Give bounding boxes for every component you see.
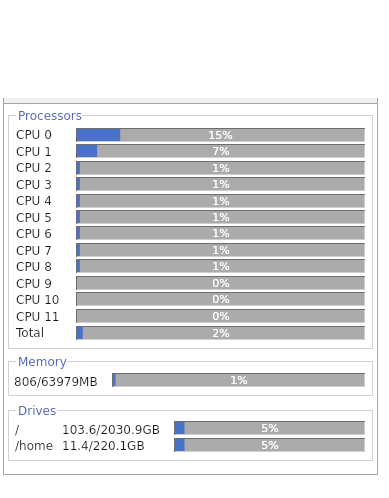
staticText: CPU 11 [16, 310, 60, 324]
staticText: CPU 3 [16, 178, 52, 192]
staticText: 5% [261, 439, 279, 452]
button[interactable]: CPU 10 usage [76, 292, 365, 306]
staticText: CPU 2 [16, 161, 52, 175]
button[interactable]: CPU 0 usage [76, 128, 365, 142]
staticText: Drives [18, 404, 57, 418]
staticText: 0% [212, 293, 230, 306]
staticText: 806/63979MB [14, 375, 98, 389]
staticText: Memory [18, 355, 67, 369]
button[interactable]: CPU 2 usage [76, 161, 365, 175]
staticText: CPU 7 [16, 244, 52, 258]
button[interactable]: CPU 11 usage [76, 309, 365, 323]
staticText: 5% [261, 422, 279, 435]
staticText: 1% [212, 162, 230, 175]
staticText: / [15, 423, 20, 437]
staticText: 1% [212, 195, 230, 208]
staticText: CPU 0 [16, 128, 52, 142]
staticText: 2% [212, 327, 230, 340]
button[interactable]: CPU 7 usage [76, 243, 365, 257]
button[interactable]: CPU 5 usage [76, 210, 365, 224]
staticText: 103.6/2030.9GB [62, 423, 160, 437]
staticText: 1% [212, 211, 230, 224]
staticText: CPU 6 [16, 227, 52, 241]
button[interactable]: Total CPU usage [76, 326, 365, 340]
staticText: 1% [212, 244, 230, 257]
staticText: Processors [18, 109, 83, 123]
staticText: 11.4/220.1GB [62, 439, 145, 453]
staticText: CPU 8 [16, 260, 52, 274]
button[interactable]: CPU 6 usage [76, 226, 365, 240]
staticText: 1% [212, 260, 230, 273]
staticText: CPU 10 [16, 293, 60, 307]
staticText: 1% [230, 374, 248, 387]
staticText: CPU 1 [16, 145, 52, 159]
staticText: 1% [212, 178, 230, 191]
button[interactable]: Memory usage [112, 373, 365, 387]
button[interactable]: Home drive usage [174, 438, 365, 452]
button[interactable]: CPU 9 usage [76, 276, 365, 290]
staticText: 15% [208, 129, 233, 142]
button[interactable]: CPU 3 usage [76, 177, 365, 191]
staticText: 7% [212, 145, 230, 158]
staticText: /home [15, 439, 54, 453]
staticText: 0% [212, 310, 230, 323]
button[interactable]: Root drive usage [174, 421, 365, 435]
staticText: CPU 9 [16, 277, 52, 291]
staticText: CPU 4 [16, 194, 52, 208]
staticText: CPU 5 [16, 211, 52, 225]
button[interactable]: CPU 1 usage [76, 144, 365, 158]
button[interactable]: CPU 4 usage [76, 194, 365, 208]
staticText: 1% [212, 227, 230, 240]
staticText: Total [16, 326, 45, 340]
button[interactable]: CPU 8 usage [76, 259, 365, 273]
staticText: 0% [212, 277, 230, 290]
